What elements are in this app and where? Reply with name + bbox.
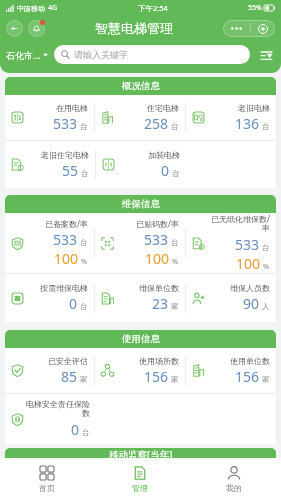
- staticText: %: [172, 256, 179, 266]
- staticText: 概况信息: [122, 80, 160, 92]
- staticText: 中国移动: [17, 4, 45, 13]
- button[interactable]: 请输入关键字: [61, 45, 243, 64]
- staticText: %: [81, 256, 88, 266]
- staticText: 136: [235, 114, 260, 133]
- staticText: 0: [161, 161, 170, 180]
- staticText: 533: [53, 114, 78, 133]
- button[interactable]: 电梯安全责任保险数: [11, 394, 90, 444]
- staticText: 使用单位数: [230, 356, 270, 366]
- staticText: 85: [61, 367, 78, 386]
- staticText: 下午2:54: [138, 3, 168, 13]
- staticText: 首页: [39, 483, 55, 493]
- button[interactable]: 首页: [0, 458, 93, 500]
- staticText: 23: [152, 294, 169, 313]
- staticText: 台: [171, 122, 179, 131]
- staticText: 55: [62, 161, 79, 180]
- staticText: 移动监察[当年]: [109, 448, 173, 458]
- staticText: 已安全评估: [48, 356, 88, 366]
- staticText: 156: [144, 367, 169, 386]
- staticText: 台: [262, 122, 270, 131]
- staticText: 在用电梯: [56, 103, 88, 113]
- staticText: 台: [82, 428, 90, 437]
- staticText: 100: [145, 249, 170, 268]
- staticText: 管理: [132, 483, 148, 493]
- button[interactable]: Notifications: [28, 20, 45, 37]
- staticText: 55%: [248, 3, 262, 13]
- button[interactable]: 住宅电梯: [101, 95, 179, 140]
- staticText: 台: [80, 122, 88, 131]
- staticText: 已贴码数/率: [136, 218, 179, 229]
- staticText: 533: [144, 230, 169, 249]
- staticText: 已备案数/率: [45, 218, 88, 229]
- button[interactable]: 石化市...: [6, 49, 48, 61]
- staticText: 石化市...: [6, 49, 41, 61]
- button[interactable]: 使用单位数: [192, 348, 270, 393]
- staticText: 维保信息: [122, 198, 160, 210]
- button[interactable]: 维保单位数: [101, 274, 179, 322]
- button[interactable]: More options: [223, 20, 275, 37]
- staticText: 按需维保电梯: [40, 283, 88, 293]
- staticText: 台: [262, 243, 270, 252]
- staticText: 老旧住宅电梯: [41, 150, 89, 160]
- button[interactable]: 老旧住宅电梯: [11, 141, 89, 188]
- staticText: 258: [144, 114, 169, 133]
- staticText: 台: [80, 302, 88, 311]
- button[interactable]: 已无纸化维保数/率: [192, 213, 270, 273]
- staticText: 90: [243, 294, 260, 313]
- button[interactable]: 管理: [93, 458, 187, 500]
- button[interactable]: Filter: [257, 46, 275, 64]
- staticText: 智慧电梯管理: [95, 20, 173, 36]
- staticText: 住宅电梯: [147, 103, 179, 113]
- staticText: 家: [80, 375, 88, 384]
- staticText: 台: [81, 169, 89, 178]
- button[interactable]: 已备案数/率: [11, 213, 88, 273]
- staticText: 家: [171, 375, 179, 384]
- button[interactable]: 已安全评估: [11, 348, 88, 393]
- button[interactable]: 使用场所数: [101, 348, 179, 393]
- staticText: 4G: [48, 3, 58, 13]
- staticText: 加装电梯: [148, 150, 180, 160]
- staticText: 我的: [226, 483, 242, 493]
- button[interactable]: 在用电梯: [11, 95, 88, 140]
- staticText: 台: [172, 169, 180, 178]
- button[interactable]: Back: [6, 20, 23, 37]
- staticText: 533: [235, 235, 260, 254]
- staticText: 100: [236, 254, 261, 273]
- staticText: 人: [262, 302, 270, 311]
- staticText: 维保人员数: [230, 283, 270, 293]
- staticText: 0: [69, 294, 78, 313]
- staticText: 请输入关键字: [74, 49, 128, 60]
- staticText: 已无纸化维保数/率: [207, 213, 270, 234]
- button[interactable]: 已贴码数/率: [101, 213, 179, 273]
- staticText: 电梯安全责任保险数: [26, 399, 90, 419]
- staticText: 156: [235, 367, 260, 386]
- staticText: 台: [171, 238, 179, 247]
- staticText: 100: [54, 249, 79, 268]
- button[interactable]: 按需维保电梯: [11, 274, 88, 322]
- button[interactable]: 我的: [187, 458, 281, 500]
- staticText: 533: [53, 230, 78, 249]
- staticText: 老旧电梯: [238, 103, 270, 113]
- staticText: 家: [262, 375, 270, 384]
- staticText: 使用信息: [122, 333, 160, 345]
- staticText: %: [263, 261, 270, 271]
- staticText: 使用场所数: [139, 356, 179, 366]
- staticText: 家: [171, 302, 179, 311]
- button[interactable]: 维保人员数: [192, 274, 270, 322]
- staticText: 台: [80, 238, 88, 247]
- staticText: 0: [71, 420, 80, 439]
- button[interactable]: 老旧电梯: [192, 95, 270, 140]
- button[interactable]: 加装电梯: [102, 141, 180, 188]
- staticText: 维保单位数: [139, 283, 179, 293]
